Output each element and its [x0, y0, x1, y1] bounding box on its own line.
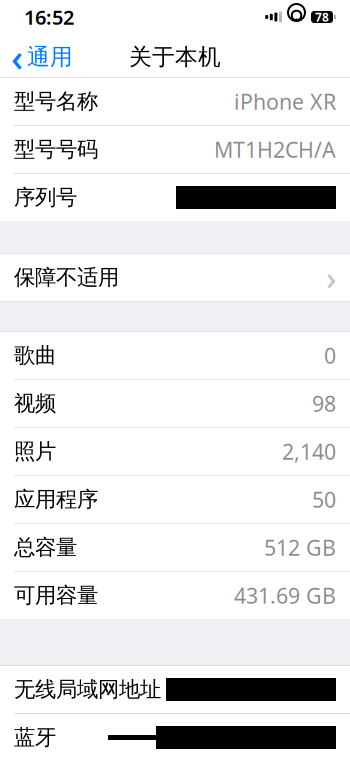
button[interactable]: 保障不适用	[0, 254, 350, 301]
staticText: 型号号码	[14, 136, 98, 163]
staticText: 512 GB	[264, 533, 336, 562]
staticText: 蓝牙	[14, 724, 56, 751]
staticText: 通用	[27, 43, 73, 71]
staticText: 无线局域网地址	[14, 676, 161, 703]
staticText: 视频	[14, 390, 56, 417]
staticText: 保障不适用	[14, 264, 119, 291]
staticText: 照片	[14, 438, 56, 465]
staticText: 2,140	[282, 437, 336, 466]
staticText: 应用程序	[14, 486, 98, 513]
staticText: ›	[326, 256, 336, 299]
staticText: 50	[312, 485, 336, 514]
staticText: 98	[312, 389, 336, 418]
staticText: 序列号	[14, 184, 77, 211]
staticText: 可用容量	[14, 582, 98, 609]
staticText: 431.69 GB	[234, 581, 336, 610]
staticText: ‹	[11, 32, 23, 82]
staticText: 关于本机	[129, 43, 221, 71]
staticText: MT1H2CH/A	[214, 135, 336, 164]
button[interactable]: ‹	[0, 37, 81, 77]
staticText: 78	[315, 9, 329, 25]
staticText: 歌曲	[14, 342, 56, 369]
staticText: 16:52	[24, 4, 74, 30]
staticText: 0	[324, 341, 336, 370]
staticText: 总容量	[14, 534, 77, 561]
staticText: 型号名称	[14, 88, 98, 115]
staticText: iPhone XR	[234, 87, 336, 116]
